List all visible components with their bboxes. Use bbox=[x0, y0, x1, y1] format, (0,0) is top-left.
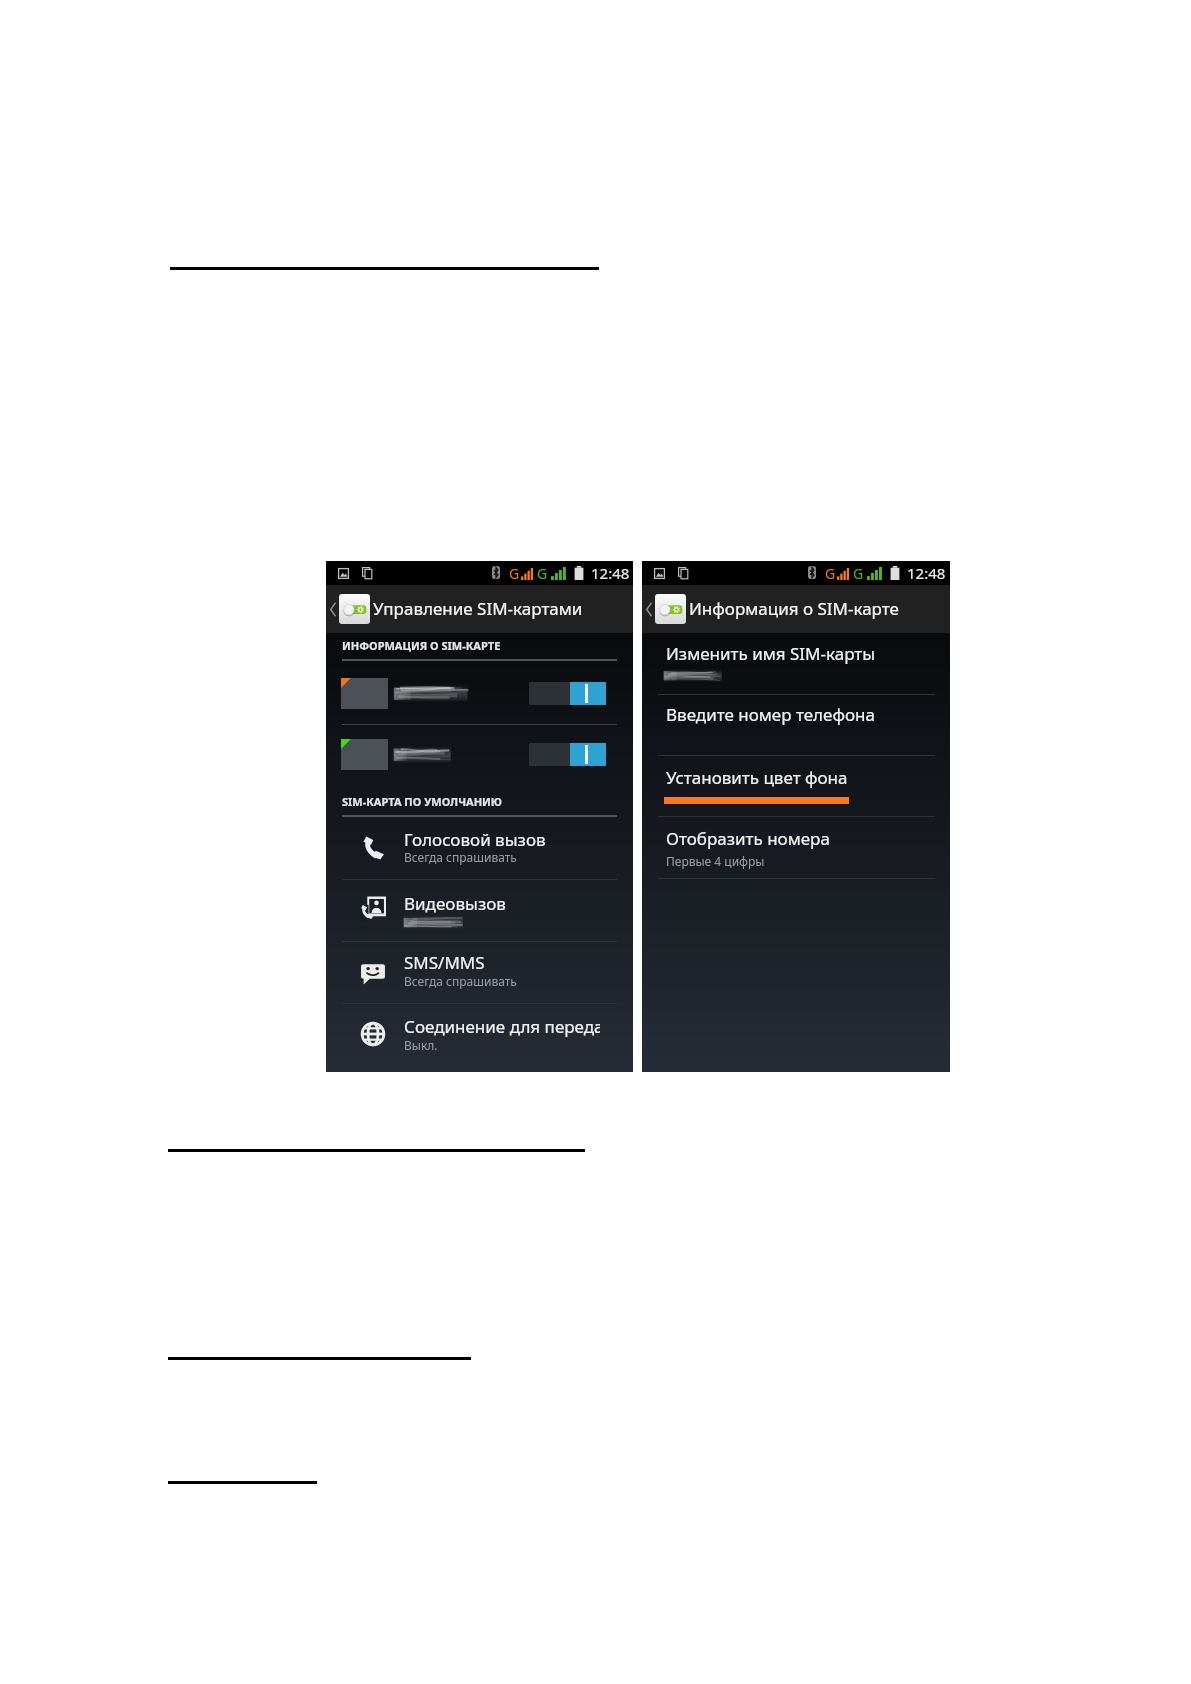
staticText: Отобразить номера bbox=[666, 827, 830, 850]
staticText: Первые 4 цифры bbox=[666, 853, 765, 869]
button[interactable] bbox=[326, 739, 633, 785]
button[interactable]: Видеовызов bbox=[326, 879, 633, 941]
button[interactable]: Back bbox=[326, 585, 633, 633]
staticText: SIM-КАРТА ПО УМОЛЧАНИЮ bbox=[342, 794, 503, 809]
staticText: G bbox=[853, 564, 864, 583]
staticText: Изменить имя SIM-карты bbox=[666, 642, 876, 665]
button[interactable]: SMS/MMS bbox=[326, 941, 633, 1003]
staticText: Всегда спрашивать bbox=[404, 973, 517, 989]
staticText: Выкл. bbox=[404, 1037, 438, 1053]
staticText: Видеовызов bbox=[404, 892, 506, 914]
staticText: G bbox=[825, 564, 836, 583]
staticText: G bbox=[537, 564, 548, 583]
staticText: 12:48 bbox=[907, 563, 946, 583]
staticText: Голосовой вызов bbox=[404, 828, 546, 850]
button[interactable]: Голосовой вызов bbox=[326, 815, 633, 877]
staticText: Информация о SIM-карте bbox=[689, 597, 899, 620]
staticText: Управление SIM-картами bbox=[373, 597, 583, 620]
staticText: Всегда спрашивать bbox=[404, 849, 517, 865]
button[interactable]: Установить цвет фона bbox=[642, 755, 950, 816]
staticText: ИНФОРМАЦИЯ О SIM-КАРТЕ bbox=[342, 638, 501, 653]
button[interactable]: Введите номер телефона bbox=[642, 694, 950, 756]
staticText: SMS/MMS bbox=[404, 951, 485, 973]
button[interactable]: Изменить имя SIM-карты bbox=[642, 634, 950, 694]
other: Back bbox=[330, 602, 336, 617]
other: Back bbox=[646, 602, 652, 617]
button[interactable]: Соединение для передачи данных bbox=[326, 1003, 633, 1065]
staticText: Введите номер телефона bbox=[666, 703, 875, 726]
button[interactable] bbox=[326, 678, 633, 724]
button[interactable]: Отобразить номера bbox=[642, 816, 950, 878]
staticText: Соединение для передачи данных bbox=[404, 1015, 600, 1037]
button[interactable]: Back bbox=[642, 585, 950, 633]
staticText: G bbox=[509, 564, 520, 583]
staticText: Установить цвет фона bbox=[666, 766, 848, 789]
staticText: 12:48 bbox=[591, 563, 630, 583]
